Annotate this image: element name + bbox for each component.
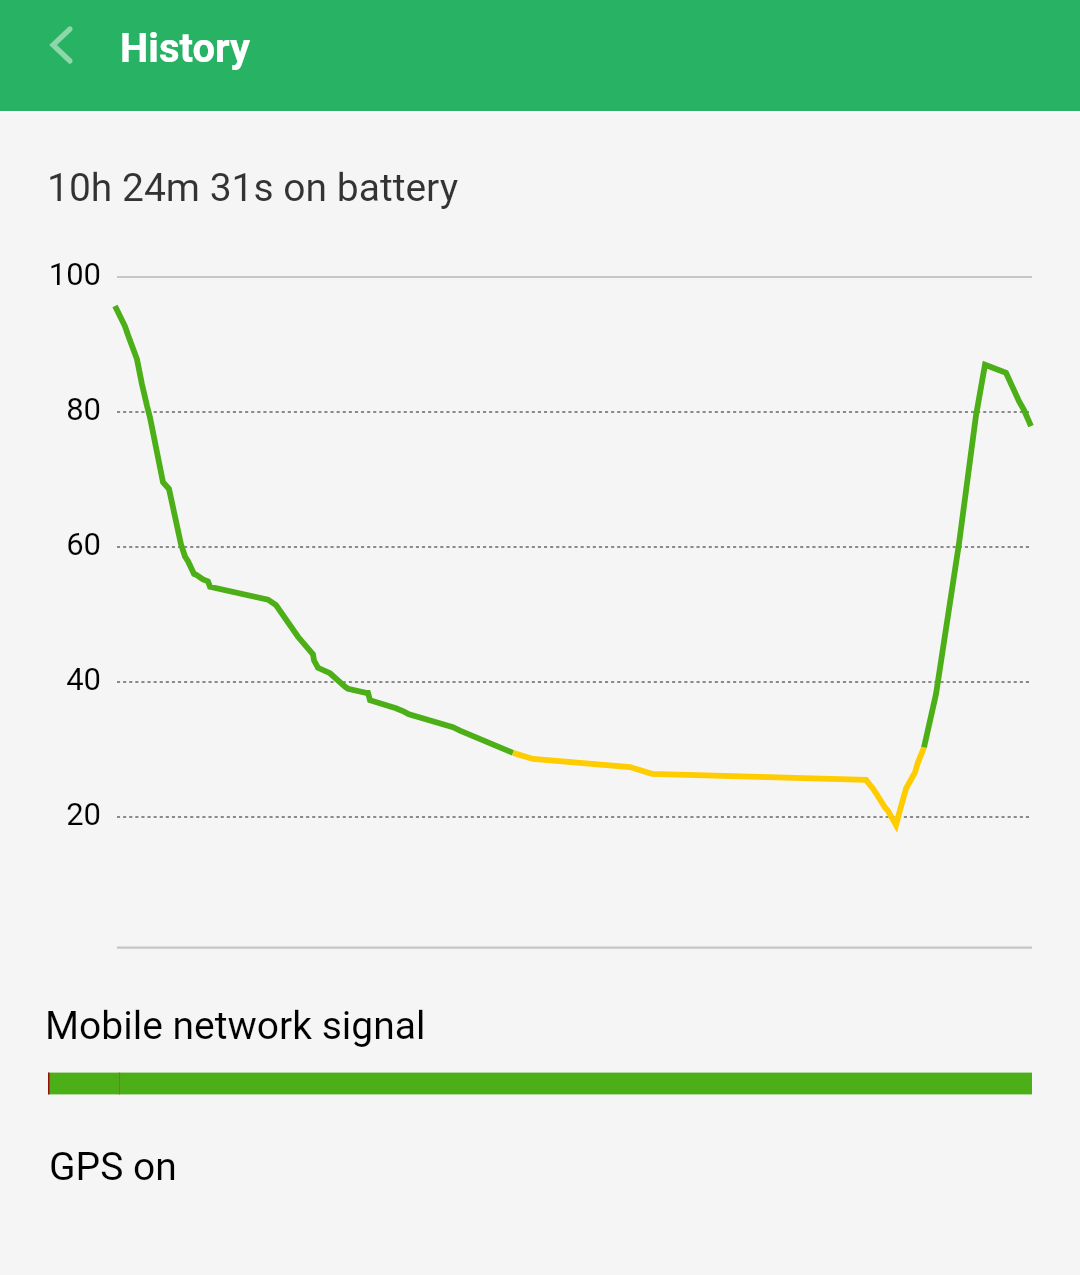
- staticText: Mobile network signal: [45, 1003, 426, 1049]
- staticText: 20: [66, 796, 101, 832]
- button[interactable]: Mobile network signal: [0, 975, 1080, 1105]
- button[interactable]: GPS on: [0, 1115, 1080, 1215]
- staticText: 100: [48, 256, 101, 292]
- staticText: GPS on: [49, 1144, 177, 1190]
- staticText: 40: [66, 661, 101, 697]
- staticText: 80: [66, 391, 101, 427]
- staticText: 10h 24m 31s on battery: [47, 165, 459, 211]
- staticText: 60: [66, 526, 101, 562]
- button[interactable]: Navigate up: [24, 8, 98, 82]
- staticText: History: [120, 25, 251, 72]
